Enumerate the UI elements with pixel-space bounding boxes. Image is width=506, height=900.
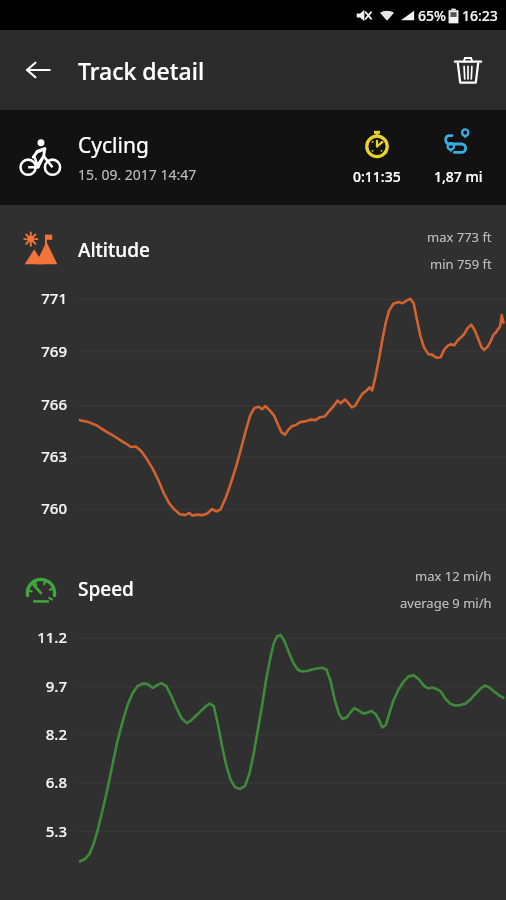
button[interactable]: Altitude	[0, 219, 506, 281]
staticText: average 9 mi/h	[400, 594, 492, 612]
button[interactable]: Cycling	[0, 110, 506, 205]
button[interactable]: 0:11:35	[338, 129, 416, 186]
staticText: 15. 09. 2017 14:47	[78, 165, 197, 184]
staticText: 1,87 mi	[434, 167, 483, 186]
staticText: 65%	[418, 6, 446, 25]
staticText: 760	[0, 498, 67, 518]
staticText: Altitude	[78, 237, 150, 263]
staticText: max 773 ft	[427, 228, 492, 246]
staticText: 9.7	[0, 676, 67, 696]
staticText: Speed	[78, 576, 134, 602]
staticText: 763	[0, 446, 67, 466]
staticText: 8.2	[0, 724, 67, 744]
staticText: 16:23	[462, 6, 498, 25]
staticText: max 12 mi/h	[415, 567, 492, 585]
staticText: 6.8	[0, 772, 67, 792]
staticText: 0:11:35	[353, 167, 401, 186]
staticText: Cycling	[78, 131, 149, 160]
staticText: 11.2	[0, 627, 67, 647]
button[interactable]: Speed	[0, 558, 506, 620]
button[interactable]: 1,87 mi	[416, 129, 500, 186]
staticText: Track detail	[78, 55, 205, 86]
staticText: 769	[0, 341, 67, 361]
button[interactable]: Back	[14, 46, 62, 94]
staticText: min 759 ft	[430, 255, 492, 273]
staticText: 5.3	[0, 821, 67, 841]
staticText: 766	[0, 394, 67, 414]
button[interactable]: Delete	[444, 46, 492, 94]
staticText: 771	[0, 288, 67, 308]
